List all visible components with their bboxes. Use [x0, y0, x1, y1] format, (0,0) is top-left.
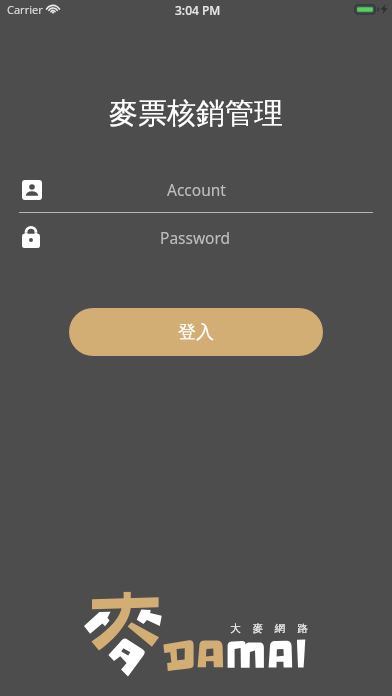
staticText: 大 麥 網 路: [230, 621, 313, 635]
staticText: 3:04 PM: [175, 2, 221, 18]
button[interactable]: Account: [0, 169, 392, 210]
staticText: Carrier: [7, 2, 43, 17]
staticText: 登入: [178, 321, 214, 344]
staticText: Password: [160, 227, 231, 248]
staticText: Account: [167, 179, 226, 200]
button[interactable]: Password: [0, 216, 392, 258]
staticText: 麥票核銷管理: [109, 95, 283, 132]
button[interactable]: 登入: [69, 308, 323, 356]
